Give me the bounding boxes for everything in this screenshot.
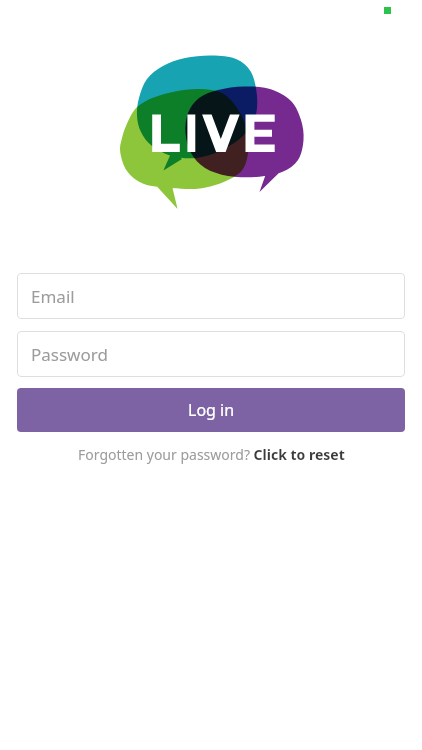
button[interactable]: Email	[17, 273, 405, 319]
button[interactable]: Forgotten your password? Click to reset	[78, 445, 345, 464]
staticText: Email	[31, 285, 75, 308]
button[interactable]: Password	[17, 331, 405, 377]
staticText: Password	[31, 343, 108, 366]
staticText: Log in	[188, 399, 235, 421]
button[interactable]: Log in	[17, 388, 405, 432]
